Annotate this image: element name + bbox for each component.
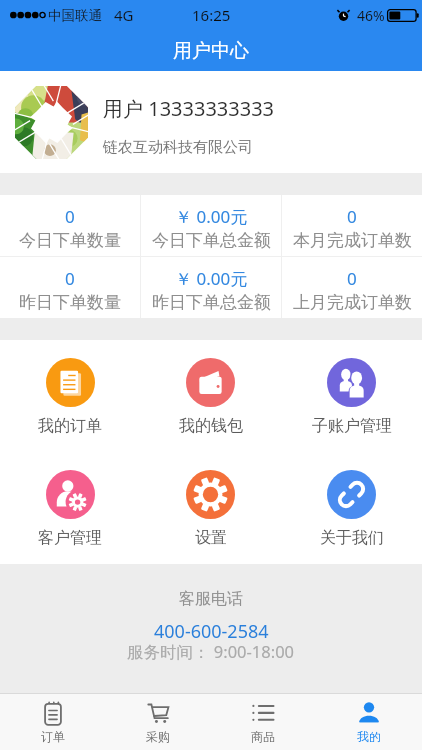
staticText: 我的 — [357, 729, 381, 744]
staticText: 0 — [65, 267, 75, 290]
staticText: 昨日下单总金额 — [152, 292, 271, 313]
button[interactable]: 我的钱包 — [140, 340, 281, 452]
staticText: 4G — [114, 5, 134, 25]
button[interactable]: 400-600-2584 — [148, 618, 275, 645]
staticText: 子账户管理 — [312, 416, 392, 436]
staticText: 设置 — [195, 528, 227, 548]
staticText: 上月完成订单数 — [293, 292, 412, 313]
staticText: ￥ 0.00元 — [175, 205, 248, 228]
button[interactable]: ￥ 0.00元 — [141, 257, 281, 318]
staticText: 今日下单数量 — [19, 230, 121, 251]
button[interactable]: ￥ 0.00元 — [141, 195, 281, 256]
staticText: 0 — [65, 205, 75, 228]
staticText: 400-600-2584 — [154, 619, 269, 644]
staticText: ￥ 0.00元 — [175, 267, 248, 290]
button[interactable]: 0 — [0, 257, 140, 318]
button[interactable]: 客户管理 — [0, 452, 140, 564]
button[interactable]: 0 — [282, 257, 422, 318]
staticText: 链农互动科技有限公司 — [103, 138, 253, 157]
button[interactable]: 0 — [282, 195, 422, 256]
staticText: 订单 — [41, 729, 65, 744]
button[interactable]: 用户 13333333333 — [0, 71, 422, 173]
staticText: 客户管理 — [38, 528, 102, 548]
staticText: 0 — [347, 205, 357, 228]
staticText: 用户 13333333333 — [103, 95, 275, 122]
button[interactable]: 0 — [0, 195, 140, 256]
staticText: 用户中心 — [173, 39, 249, 63]
staticText: 46% — [357, 6, 385, 25]
button[interactable]: 订单 — [0, 694, 105, 750]
staticText: 16:25 — [192, 5, 231, 25]
button[interactable]: 子账户管理 — [281, 340, 422, 452]
button[interactable]: 采购 — [105, 694, 210, 750]
button[interactable]: 我的订单 — [0, 340, 140, 452]
button[interactable]: 我的 — [316, 694, 422, 750]
staticText: 客服电话 — [179, 589, 243, 609]
button[interactable]: 商品 — [210, 694, 316, 750]
staticText: 服务时间： 9:00-18:00 — [127, 640, 295, 663]
staticText: 我的订单 — [38, 416, 102, 436]
staticText: 采购 — [146, 729, 170, 744]
staticText: 我的钱包 — [179, 416, 243, 436]
staticText: 昨日下单数量 — [19, 292, 121, 313]
staticText: 商品 — [251, 729, 275, 744]
button[interactable]: 设置 — [140, 452, 281, 564]
staticText: 今日下单总金额 — [152, 230, 271, 251]
button[interactable]: 关于我们 — [281, 452, 422, 564]
staticText: 0 — [347, 267, 357, 290]
staticText: 中国联通 — [48, 7, 102, 24]
staticText: 关于我们 — [320, 528, 384, 548]
staticText: 本月完成订单数 — [293, 230, 412, 251]
